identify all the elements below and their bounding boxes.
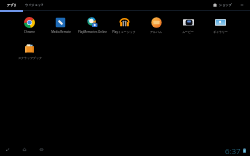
staticText: アプリ [7,3,17,7]
button[interactable]: Chrome [14,13,45,39]
staticText: ギャラリー [213,30,228,34]
button[interactable]: アプリ [0,0,23,10]
button[interactable]: PlayMemories Online [76,13,108,39]
button[interactable]: ショップ [213,3,232,7]
button[interactable]: Back [0,142,14,156]
staticText: Playミュージック [112,30,136,34]
staticText: PlayMemories Online [78,30,107,34]
staticText: ショップ [219,3,232,7]
button[interactable]: Home [17,142,31,156]
button[interactable]: Menu [239,2,245,8]
button[interactable]: アルバム [140,13,172,39]
staticText: ウィジェット [25,3,44,7]
button[interactable]: ムービー [172,13,204,39]
staticText: スクラップブック [18,56,42,60]
button[interactable]: ウィジェット [23,0,46,10]
staticText: ムービー [182,30,194,34]
staticText: Media Remote [51,30,71,34]
button[interactable]: スクラップブック [14,39,45,65]
button[interactable]: ギャラリー [204,13,236,39]
staticText: 6:37 [225,145,241,156]
staticText: Chrome [24,30,35,34]
button[interactable]: Media Remote [45,13,76,39]
button[interactable]: Recent apps [34,142,48,156]
button[interactable]: Playミュージック [108,13,140,39]
staticText: アルバム [150,30,162,34]
